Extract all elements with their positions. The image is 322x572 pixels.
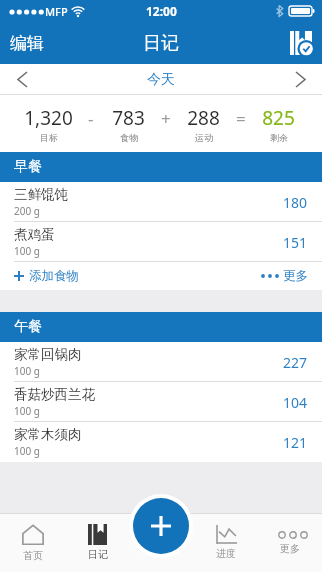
- staticText: 运动: [195, 132, 213, 143]
- staticText: MFP: [45, 4, 68, 19]
- staticText: 100 g: [14, 244, 40, 258]
- staticText: 227: [283, 353, 308, 372]
- staticText: 添加食物: [29, 268, 79, 284]
- staticText: 编辑: [10, 33, 44, 54]
- staticText: -: [88, 107, 94, 130]
- staticText: 783: [112, 105, 145, 131]
- button[interactable]: 今天: [147, 71, 175, 89]
- staticText: 100 g: [14, 404, 40, 418]
- staticText: 288: [187, 105, 220, 131]
- button[interactable]: Next day: [278, 64, 322, 95]
- staticText: 日记: [88, 548, 108, 561]
- button[interactable]: 午餐: [14, 312, 322, 342]
- button[interactable]: 煮鸡蛋: [0, 222, 322, 262]
- staticText: 12:00: [146, 3, 177, 19]
- button[interactable]: 三鲜馄饨: [0, 182, 322, 222]
- button[interactable]: 更多: [258, 513, 322, 572]
- staticText: 151: [283, 233, 308, 252]
- button[interactable]: Complete diary: [290, 22, 312, 64]
- staticText: 更多: [280, 542, 300, 555]
- staticText: 剩余: [270, 132, 288, 143]
- button[interactable]: 日记: [65, 513, 130, 572]
- staticText: 目标: [40, 132, 58, 143]
- button[interactable]: 首页: [0, 513, 65, 572]
- button[interactable]: Previous day: [0, 64, 44, 95]
- button[interactable]: 添加食物: [14, 262, 79, 290]
- staticText: 首页: [23, 549, 43, 562]
- staticText: 121: [283, 433, 308, 452]
- staticText: +: [161, 107, 171, 130]
- button[interactable]: Add entry: [133, 498, 189, 554]
- staticText: 日记: [143, 32, 179, 55]
- staticText: 更多: [283, 268, 308, 284]
- button[interactable]: 1,320: [16, 95, 306, 152]
- button[interactable]: 家常木须肉: [0, 422, 322, 462]
- staticText: 煮鸡蛋: [14, 226, 55, 243]
- staticText: =: [236, 107, 246, 130]
- staticText: 200 g: [14, 204, 40, 218]
- staticText: 家常回锅肉: [14, 346, 82, 363]
- staticText: 三鲜馄饨: [14, 186, 68, 203]
- button[interactable]: 进度: [194, 513, 258, 572]
- button[interactable]: 家常回锅肉: [0, 342, 322, 382]
- staticText: 825: [262, 105, 295, 131]
- staticText: 进度: [216, 547, 236, 560]
- staticText: 1,320: [24, 105, 73, 131]
- button[interactable]: 早餐: [14, 152, 322, 182]
- staticText: 食物: [120, 132, 138, 143]
- staticText: 180: [283, 193, 308, 212]
- staticText: 家常木须肉: [14, 426, 82, 443]
- staticText: 100 g: [14, 364, 40, 378]
- staticText: 早餐: [14, 158, 42, 176]
- button[interactable]: 编辑: [10, 22, 44, 64]
- staticText: 104: [283, 393, 308, 412]
- staticText: 午餐: [14, 318, 42, 336]
- staticText: 香菇炒西兰花: [14, 386, 95, 403]
- button[interactable]: 更多: [261, 262, 308, 290]
- staticText: 100 g: [14, 444, 40, 458]
- button[interactable]: 香菇炒西兰花: [0, 382, 322, 422]
